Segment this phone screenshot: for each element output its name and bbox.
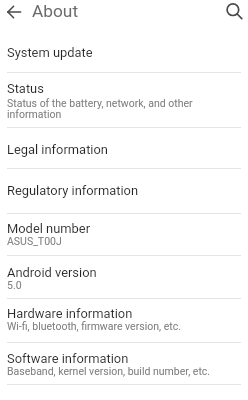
staticText: Baseband, kernel version, build number, … xyxy=(7,367,211,378)
button[interactable]: Android version xyxy=(0,256,248,299)
staticText: Regulatory information xyxy=(7,184,139,198)
staticText: 5.0 xyxy=(7,281,22,292)
button[interactable]: Search xyxy=(225,2,243,20)
button[interactable]: Legal information xyxy=(0,128,248,169)
staticText: Wi-fi, bluetooth, firmware version, etc. xyxy=(7,322,181,333)
staticText: ASUS_T00J xyxy=(7,237,62,248)
staticText: System update xyxy=(7,46,93,60)
staticText: Android version xyxy=(7,266,97,280)
staticText: About xyxy=(32,1,79,21)
staticText: Status of the battery, network, and othe… xyxy=(7,99,241,121)
staticText: Hardware information xyxy=(7,307,133,321)
button[interactable]: Regulatory information xyxy=(0,169,248,214)
button[interactable]: Model number xyxy=(0,214,248,256)
staticText: Model number xyxy=(7,222,91,236)
staticText: Legal information xyxy=(7,143,108,157)
staticText: Status xyxy=(7,82,44,96)
button[interactable]: Back xyxy=(6,4,22,20)
button[interactable]: System update xyxy=(0,36,248,73)
button[interactable]: Status xyxy=(0,73,248,128)
staticText: Software information xyxy=(7,352,129,366)
button[interactable]: Hardware information xyxy=(0,299,248,343)
button[interactable]: Software information xyxy=(0,343,248,385)
